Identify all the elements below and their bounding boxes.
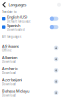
button[interactable]: English (US) — [0, 14, 64, 23]
staticText: Spanish — [7, 23, 20, 28]
button[interactable]: Bahasa Melayu — [0, 87, 64, 98]
staticText: Download — [2, 82, 16, 86]
button[interactable]: Afrikaans — [0, 42, 64, 53]
staticText: Downloaded — [7, 28, 25, 31]
staticText: Offline — [2, 49, 12, 52]
staticText: Default language — [7, 20, 31, 23]
button[interactable]: Albanian — [0, 53, 64, 65]
staticText: Download — [2, 71, 16, 75]
staticText: Translate to — [2, 10, 17, 14]
staticText: English (US) — [7, 14, 27, 20]
staticText: Languages — [8, 2, 26, 7]
staticText: Albanian — [2, 55, 17, 60]
button[interactable]: Spanish — [0, 23, 64, 31]
button[interactable]: Back — [0, 0, 8, 9]
staticText: Bahasa Melayu — [2, 88, 29, 94]
staticText: Download — [2, 60, 16, 63]
button[interactable]: Azerbaijani — [0, 76, 64, 87]
staticText: All languages — [2, 35, 21, 38]
button[interactable]: More options — [57, 0, 64, 9]
staticText: Amharic — [2, 66, 18, 71]
staticText: Download — [2, 94, 16, 97]
button[interactable]: Amharic — [0, 65, 64, 76]
staticText: Azerbaijani — [2, 77, 22, 82]
staticText: Afrikaans — [2, 43, 19, 49]
